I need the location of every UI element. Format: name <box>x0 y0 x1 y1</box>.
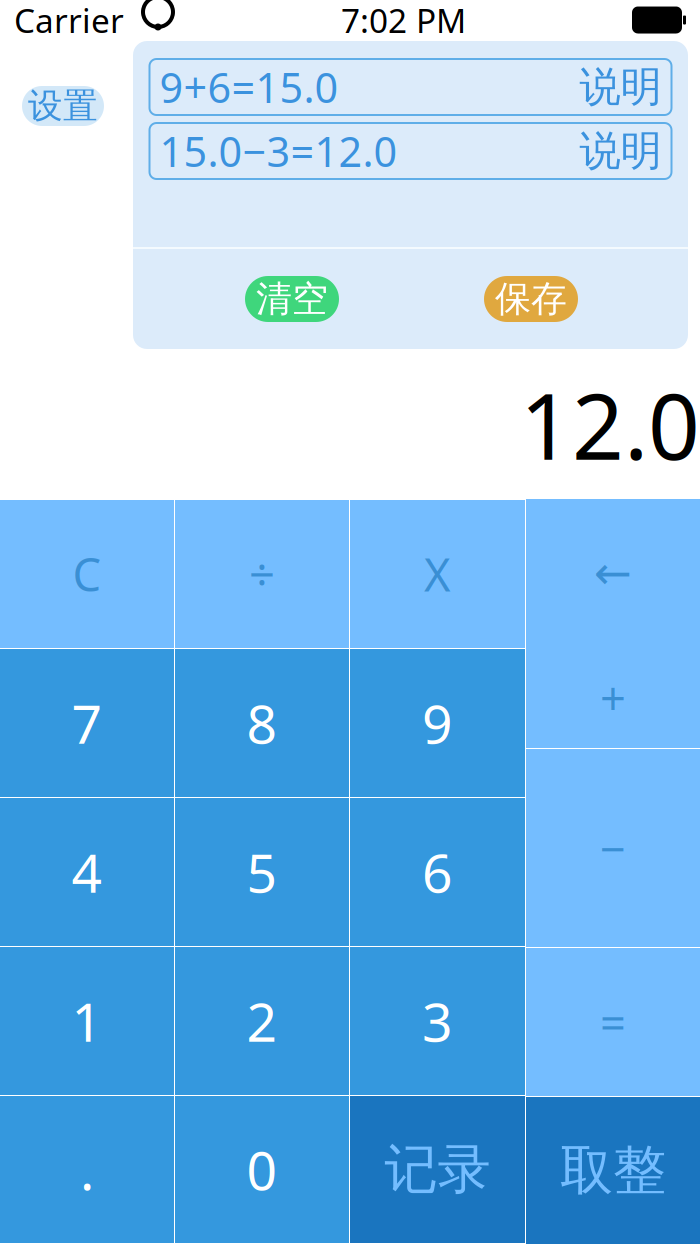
staticText: 15.0−3=12.0 <box>159 124 397 178</box>
button[interactable]: . <box>0 1096 174 1243</box>
staticText: 0 <box>246 1134 277 1205</box>
button[interactable]: 15.0−3=12.0 <box>149 123 671 179</box>
button[interactable]: 0 <box>175 1096 349 1243</box>
button[interactable]: 6 <box>350 798 525 946</box>
staticText: 取整 <box>560 1138 666 1203</box>
staticText: 1 <box>71 986 102 1056</box>
button[interactable]: 清空 <box>245 276 339 322</box>
button[interactable]: C <box>0 500 174 648</box>
staticText: 9 <box>422 688 453 758</box>
button[interactable]: 2 <box>175 947 349 1095</box>
staticText: 清空 <box>256 277 328 321</box>
button[interactable]: 1 <box>0 947 174 1095</box>
staticText: 7 <box>71 688 102 758</box>
staticText: 9+6=15.0 <box>159 60 338 114</box>
button[interactable]: ← <box>526 499 700 748</box>
staticText: 3 <box>422 986 453 1056</box>
staticText: 5 <box>246 837 277 907</box>
staticText: ← <box>594 547 632 599</box>
button[interactable]: = <box>526 948 700 1096</box>
button[interactable]: X <box>350 500 525 648</box>
staticText: 8 <box>246 688 277 758</box>
button[interactable]: 4 <box>0 798 174 946</box>
staticText: 说明 <box>579 126 661 176</box>
staticText <box>124 0 142 42</box>
staticText: + <box>600 667 626 728</box>
staticText: . <box>80 1134 94 1205</box>
staticText: 6 <box>422 837 453 907</box>
staticText: ÷ <box>249 544 275 604</box>
staticText: 说明 <box>579 62 661 112</box>
button[interactable]: 5 <box>175 798 349 946</box>
button[interactable]: 9 <box>350 649 525 797</box>
button[interactable]: 8 <box>175 649 349 797</box>
staticText: X <box>424 544 451 604</box>
button[interactable]: ÷ <box>175 500 349 648</box>
button[interactable]: 取整 <box>526 1097 700 1244</box>
button[interactable]: 保存 <box>484 276 578 322</box>
staticText: 记录 <box>384 1137 490 1202</box>
staticText: Carrier <box>14 0 124 42</box>
staticText: 7:02 PM <box>341 0 466 42</box>
button[interactable]: 7 <box>0 649 174 797</box>
staticText: 保存 <box>495 277 567 321</box>
staticText: 设置 <box>28 85 98 127</box>
button[interactable]: 9+6=15.0 <box>149 59 671 115</box>
staticText: 12.0 <box>520 364 700 485</box>
staticText: 2 <box>246 986 277 1056</box>
staticText: 4 <box>71 837 102 907</box>
button[interactable]: 设置 <box>22 86 104 126</box>
staticText: − <box>600 818 626 878</box>
staticText: = <box>600 992 626 1052</box>
staticText: C <box>72 544 101 604</box>
button[interactable]: 3 <box>350 947 525 1095</box>
button[interactable]: 记录 <box>350 1096 525 1243</box>
